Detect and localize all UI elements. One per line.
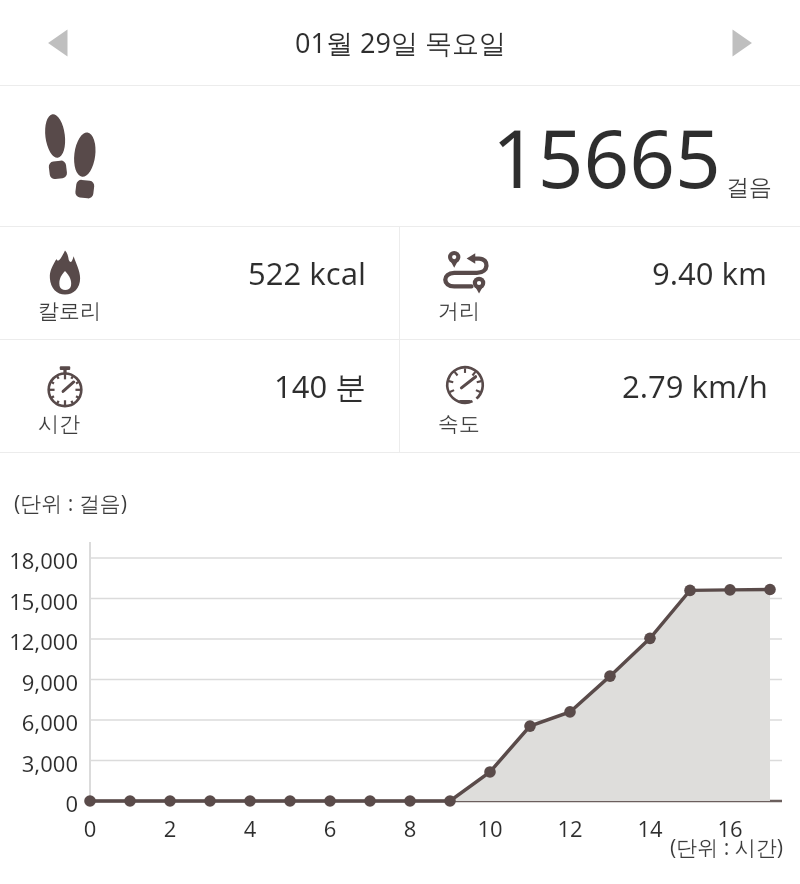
staticText: 걸음: [726, 173, 772, 202]
staticText: 2.79 km/h: [622, 365, 768, 407]
staticText: 140 분: [274, 365, 367, 407]
staticText: 16: [710, 813, 750, 843]
staticText: 12: [550, 813, 590, 843]
staticText: 속도: [438, 411, 480, 437]
button[interactable]: Previous day: [34, 16, 88, 70]
staticText: 4: [230, 813, 270, 843]
staticText: 12,000: [0, 626, 78, 656]
staticText: 10: [470, 813, 510, 843]
button[interactable]: Next day: [712, 16, 766, 70]
staticText: 18,000: [0, 545, 78, 575]
button[interactable]: 15665: [0, 86, 800, 226]
staticText: 칼로리: [38, 298, 101, 324]
staticText: 6: [310, 813, 350, 843]
staticText: 6,000: [0, 707, 78, 737]
button[interactable]: Time: [0, 340, 399, 452]
staticText: 9.40 km: [652, 252, 768, 294]
staticText: (단위 : 시간): [670, 833, 784, 862]
staticText: 3,000: [0, 748, 78, 778]
staticText: 거리: [438, 298, 480, 324]
staticText: 01월 29일 목요일: [295, 24, 506, 61]
staticText: 0: [70, 813, 110, 843]
staticText: 시간: [38, 411, 80, 437]
staticText: 15,000: [0, 586, 78, 616]
staticText: 15665: [492, 102, 721, 211]
staticText: 2: [150, 813, 190, 843]
button[interactable]: Distance: [400, 227, 800, 339]
staticText: 0: [0, 788, 78, 818]
button[interactable]: Speed: [400, 340, 800, 452]
staticText: 9,000: [0, 667, 78, 697]
staticText: 8: [390, 813, 430, 843]
staticText: (단위 : 걸음): [14, 489, 128, 518]
button[interactable]: Calories: [0, 227, 399, 339]
staticText: 14: [630, 813, 670, 843]
staticText: 522 kcal: [248, 252, 367, 294]
